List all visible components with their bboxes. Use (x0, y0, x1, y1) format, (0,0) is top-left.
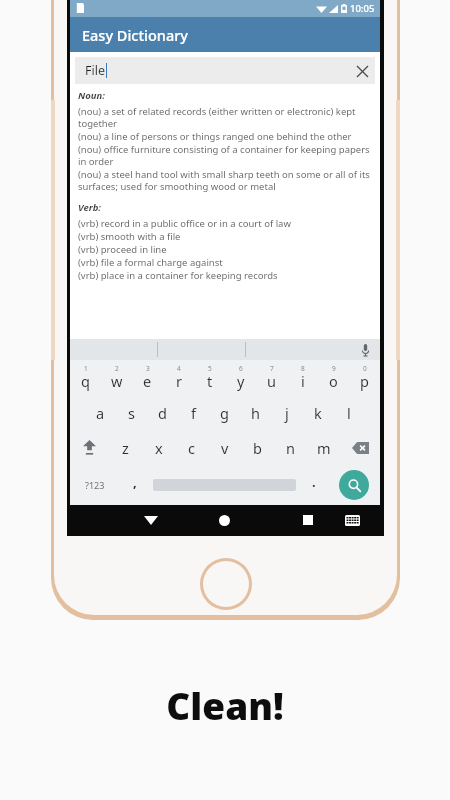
button[interactable]: n (274, 430, 307, 465)
button[interactable]: 3 (132, 360, 163, 395)
staticText: r (176, 371, 182, 391)
staticText: 5 (208, 364, 212, 373)
staticText: o (329, 371, 338, 391)
button[interactable]: Search (339, 470, 369, 500)
staticText: j (285, 403, 289, 423)
staticText: 8 (301, 364, 305, 373)
staticText: Verb: (78, 201, 102, 214)
staticText: (vrb) record in a public office or in a … (78, 217, 291, 230)
button[interactable]: c (175, 430, 208, 465)
staticText: , (133, 473, 137, 491)
button[interactable]: 9 (318, 360, 349, 395)
staticText: f (191, 403, 196, 423)
staticText: i (301, 371, 305, 391)
staticText: h (251, 403, 260, 423)
staticText: c (188, 438, 195, 458)
button[interactable]: Voice input (356, 341, 374, 359)
staticText: 4 (177, 364, 181, 373)
button[interactable]: g (209, 395, 240, 430)
staticText: 6 (239, 364, 243, 373)
staticText: File (85, 62, 105, 79)
staticText: m (317, 438, 331, 458)
button[interactable]: ?123 (70, 465, 120, 505)
staticText: 3 (146, 364, 150, 373)
staticText: Noun: (78, 89, 105, 102)
staticText: g (220, 403, 229, 423)
staticText: s (128, 403, 135, 423)
button[interactable]: v (208, 430, 241, 465)
button[interactable]: Shift (70, 430, 109, 465)
button[interactable]: d (147, 395, 178, 430)
button[interactable]: Back (130, 505, 172, 535)
staticText: (vrb) proceed in line (78, 243, 167, 256)
button[interactable]: 0 (349, 360, 380, 395)
staticText: t (207, 371, 213, 391)
staticText: u (267, 371, 276, 391)
staticText: z (122, 438, 129, 458)
staticText: (vrb) file a formal charge against (78, 256, 223, 269)
button[interactable]: Home (203, 561, 249, 607)
button[interactable]: z (109, 430, 142, 465)
staticText: n (286, 438, 295, 458)
staticText: k (314, 403, 322, 423)
staticText: x (155, 438, 163, 458)
staticText: 0 (363, 364, 367, 373)
staticText: (vrb) smooth with a file (78, 230, 181, 243)
staticText: q (81, 371, 90, 391)
button[interactable]: b (241, 430, 274, 465)
staticText: 2 (115, 364, 119, 373)
staticText: ?123 (85, 479, 105, 491)
staticText: Clean! (0, 680, 450, 730)
button[interactable]: 7 (256, 360, 287, 395)
staticText: a (96, 403, 105, 423)
button[interactable]: Recent apps (289, 505, 327, 535)
staticText: y (237, 371, 245, 391)
button[interactable]: h (240, 395, 271, 430)
button[interactable]: Comma (120, 465, 149, 505)
button[interactable]: 4 (163, 360, 194, 395)
button[interactable]: l (333, 395, 364, 430)
staticText: Easy Dictionary (82, 25, 188, 45)
button[interactable]: 1 (70, 360, 101, 395)
staticText: 10:05 (350, 2, 375, 15)
staticText: (vrb) place in a container for keeping r… (78, 269, 278, 282)
button[interactable]: k (302, 395, 333, 430)
button[interactable]: Space (149, 465, 299, 505)
staticText: . (312, 473, 316, 491)
staticText: 7 (270, 364, 274, 373)
button[interactable]: 5 (194, 360, 225, 395)
staticText: e (143, 371, 152, 391)
button[interactable]: Home (203, 505, 245, 535)
button[interactable]: Clear (349, 58, 375, 84)
staticText: 1 (84, 364, 88, 373)
staticText: v (221, 438, 229, 458)
button[interactable]: 8 (287, 360, 318, 395)
button[interactable]: 6 (225, 360, 256, 395)
button[interactable]: 2 (101, 360, 132, 395)
staticText: w (111, 371, 123, 391)
button[interactable]: m (307, 430, 340, 465)
staticText: (nou) a steel hand tool with small sharp… (78, 168, 374, 193)
staticText: p (360, 371, 369, 391)
button[interactable]: j (271, 395, 302, 430)
staticText: l (347, 403, 351, 423)
staticText: (nou) office furniture consisting of a c… (78, 143, 374, 168)
button[interactable]: s (116, 395, 147, 430)
button[interactable]: Switch keyboard (334, 505, 370, 535)
button[interactable]: f (178, 395, 209, 430)
staticText: (nou) a line of persons or things ranged… (78, 130, 352, 143)
staticText: (nou) a set of related records (either w… (78, 105, 374, 130)
button[interactable]: Backspace (340, 430, 380, 465)
staticText: 9 (332, 364, 336, 373)
button[interactable]: a (85, 395, 116, 430)
button[interactable]: x (142, 430, 175, 465)
staticText: d (158, 403, 167, 423)
button[interactable]: Period (299, 465, 328, 505)
staticText: b (253, 438, 262, 458)
button[interactable]: File (75, 57, 375, 84)
